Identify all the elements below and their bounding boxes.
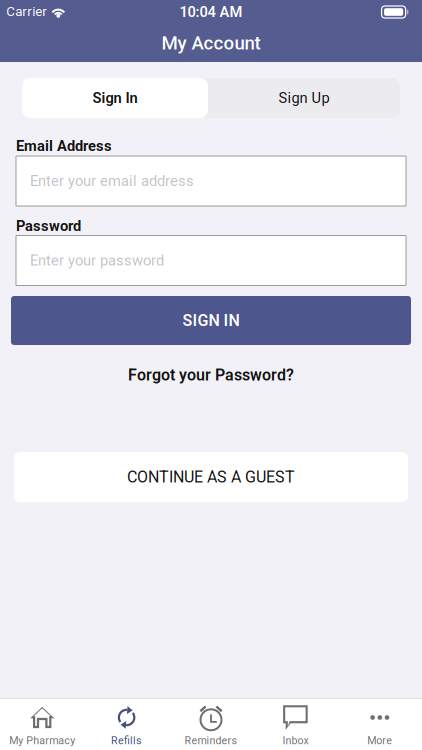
staticText: Sign In xyxy=(92,90,137,106)
button[interactable]: Sign In xyxy=(22,78,208,118)
button[interactable]: Inbox xyxy=(253,699,338,750)
staticText: Password xyxy=(16,218,81,234)
button[interactable]: SIGN IN xyxy=(11,296,411,345)
staticText: SIGN IN xyxy=(182,311,239,330)
button[interactable]: Reminders xyxy=(169,699,253,750)
staticText: Inbox xyxy=(282,734,308,747)
staticText: Refills xyxy=(111,734,142,747)
staticText: My Pharmacy xyxy=(9,734,75,747)
staticText: My Account xyxy=(161,32,260,54)
button[interactable]: Enter your password xyxy=(16,235,406,285)
button[interactable]: Refills xyxy=(84,699,169,750)
button[interactable]: Enter your email address xyxy=(16,156,406,206)
staticText: Forgot your Password? xyxy=(128,366,294,384)
button[interactable]: My Pharmacy xyxy=(0,699,84,750)
staticText: Email Address xyxy=(16,138,112,154)
staticText: Sign Up xyxy=(278,90,329,106)
staticText: Enter your email address xyxy=(30,173,194,189)
staticText: More xyxy=(367,734,392,747)
button[interactable]: Sign Up xyxy=(208,78,400,118)
staticText: 10:04 AM xyxy=(179,4,242,20)
staticText: Carrier xyxy=(6,4,47,19)
button[interactable]: CONTINUE AS A GUEST xyxy=(14,452,408,502)
staticText: Reminders xyxy=(184,734,237,747)
button[interactable]: Forgot your Password? xyxy=(91,362,331,388)
staticText: CONTINUE AS A GUEST xyxy=(127,468,295,486)
button[interactable]: More xyxy=(338,699,422,750)
staticText: Enter your password xyxy=(30,252,164,269)
